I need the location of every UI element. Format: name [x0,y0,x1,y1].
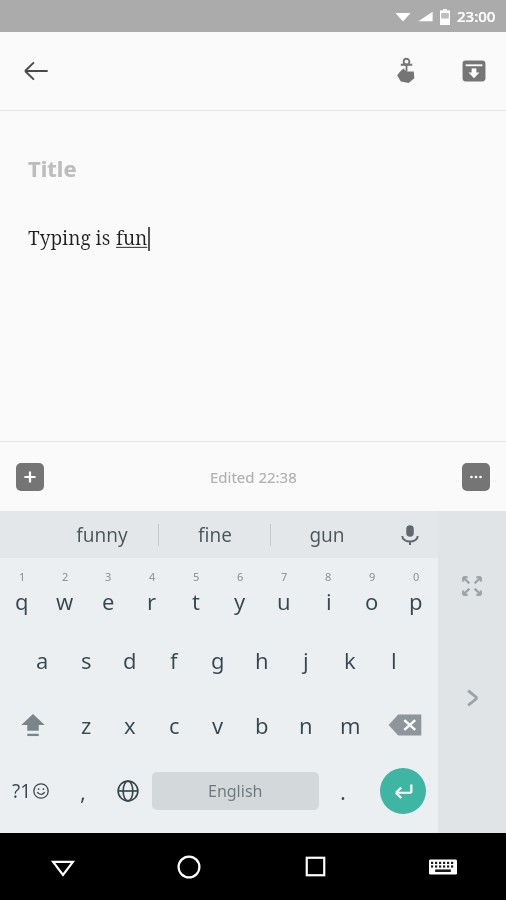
button[interactable]: 6 [218,558,262,627]
button[interactable]: d [108,627,152,692]
staticText: h [255,645,269,675]
staticText: English [208,780,263,802]
button[interactable]: Recents [252,833,379,900]
staticText: a [36,645,49,675]
button[interactable]: Symbols and emoji [0,757,61,825]
staticText: ?1 [12,778,32,804]
button[interactable]: 1 [0,558,43,627]
staticText: 8 [325,569,332,584]
staticText: j [303,645,309,675]
button[interactable]: Pin note [382,47,430,95]
staticText: funny [76,522,128,548]
staticText: o [365,586,379,616]
staticText: 6 [237,569,244,584]
staticText: p [409,586,423,616]
staticText: u [277,586,291,616]
button[interactable]: . [319,757,367,825]
staticText: r [147,586,157,616]
button[interactable]: 7 [262,558,306,627]
button[interactable]: 3 [86,558,130,627]
staticText: 3 [105,569,112,584]
staticText: 5 [193,569,200,584]
button[interactable]: x [108,692,152,757]
button[interactable]: Shift [0,692,65,757]
button[interactable]: Change language [104,757,152,825]
button[interactable]: Voice input [382,511,438,558]
staticText: z [81,710,92,740]
button[interactable]: g [196,627,240,692]
button[interactable]: n [284,692,328,757]
staticText: e [102,586,115,616]
staticText: gun [309,522,345,548]
button[interactable]: gun [271,511,382,558]
button[interactable]: fine [159,511,270,558]
staticText: v [212,710,224,740]
button[interactable]: funny [46,511,158,558]
button[interactable]: Next [449,675,495,721]
staticText: 2 [62,569,69,584]
button[interactable]: Back [12,47,60,95]
button[interactable]: 5 [174,558,218,627]
staticText: q [15,586,29,616]
staticText: Typing is [28,225,116,251]
staticText: c [169,710,180,740]
button[interactable]: 4 [130,558,174,627]
staticText: y [234,586,246,616]
staticText: g [211,645,225,675]
staticText: 9 [369,569,376,584]
button[interactable]: English [152,772,319,810]
staticText: 0 [413,569,420,584]
button[interactable]: Backspace [372,692,438,757]
button[interactable]: Title [28,153,77,183]
staticText: 7 [281,569,288,584]
staticText: Edited 22:38 [210,467,297,487]
button[interactable]: s [64,627,108,692]
staticText: , [80,776,86,806]
button[interactable]: a [21,627,64,692]
button[interactable]: 0 [394,558,438,627]
button[interactable]: h [240,627,284,692]
button[interactable]: Enter [380,768,426,814]
staticText: s [81,645,92,675]
button[interactable]: Archive [450,47,498,95]
button[interactable]: 2 [43,558,86,627]
button[interactable]: v [196,692,240,757]
button[interactable]: z [65,692,108,757]
staticText: f [170,645,178,675]
button[interactable]: Resize keyboard [449,563,495,609]
button[interactable]: , [61,757,104,825]
button[interactable]: f [152,627,196,692]
staticText: k [344,645,356,675]
staticText: n [299,710,313,740]
button[interactable]: Home [126,833,252,900]
staticText: 1 [19,569,26,584]
staticText: . [340,776,346,806]
staticText: t [192,586,200,616]
button[interactable]: c [152,692,196,757]
staticText: m [340,710,361,740]
button[interactable]: 9 [350,558,394,627]
button[interactable]: Add [8,455,52,499]
staticText: 23:00 [457,6,496,26]
staticText: l [391,645,397,675]
button[interactable]: l [372,627,416,692]
button[interactable]: j [284,627,328,692]
staticText: x [124,710,136,740]
staticText: i [326,586,332,616]
button[interactable]: Hide keyboard [0,833,126,900]
staticText: fine [198,522,232,548]
button[interactable]: k [328,627,372,692]
button[interactable]: More options [454,455,498,499]
staticText: 4 [149,569,156,584]
button[interactable]: m [328,692,372,757]
staticText: fun [116,225,148,251]
staticText: w [56,586,74,616]
staticText: b [255,710,269,740]
button[interactable]: 8 [306,558,350,627]
button[interactable]: Typing is [28,225,150,251]
button[interactable]: b [240,692,284,757]
button[interactable]: Switch keyboard [379,833,506,900]
staticText: d [123,645,137,675]
